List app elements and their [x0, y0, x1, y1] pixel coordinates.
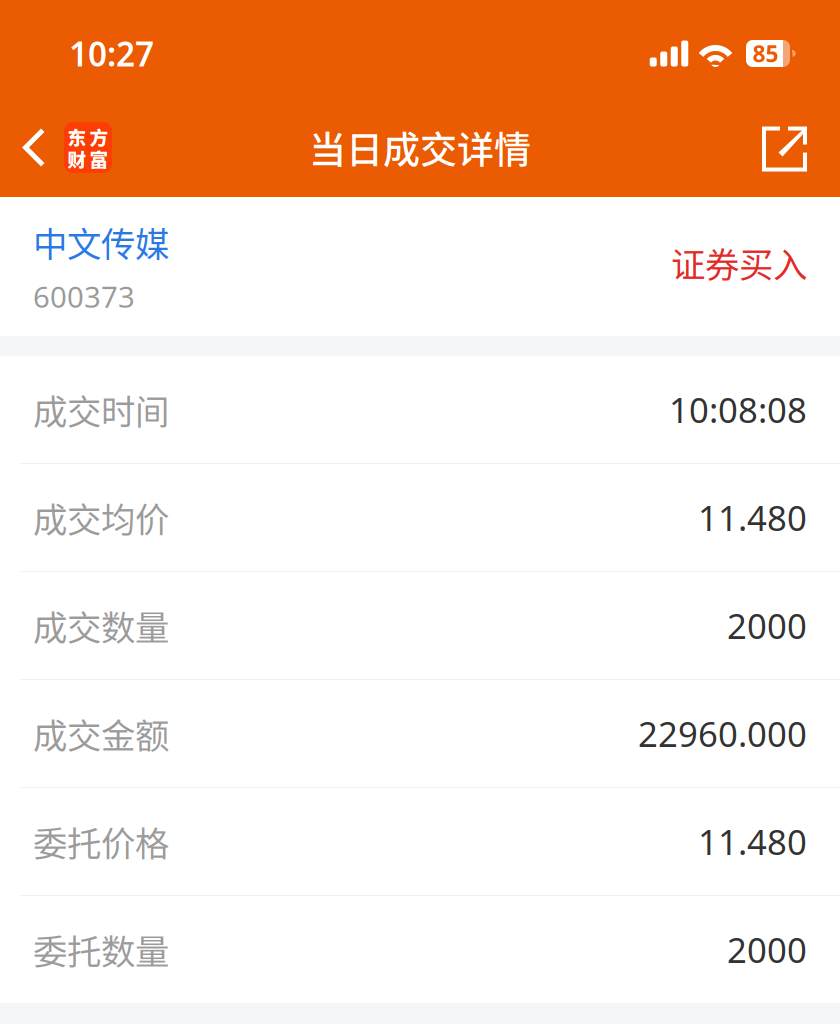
- staticText: 600373: [33, 277, 135, 316]
- staticText: 富: [89, 145, 108, 172]
- staticText: 2000: [727, 602, 807, 648]
- staticText: 22960.000: [638, 710, 807, 756]
- staticText: 10:08:08: [669, 386, 807, 432]
- staticText: 委托数量: [33, 925, 169, 974]
- staticText: 委托价格: [33, 817, 169, 866]
- staticText: 方: [89, 123, 108, 150]
- staticText: 成交数量: [33, 601, 169, 650]
- staticText: 成交金额: [33, 709, 169, 758]
- staticText: 11.480: [698, 494, 807, 540]
- button[interactable]: Back: [0, 98, 122, 197]
- staticText: 85: [752, 38, 778, 68]
- staticText: 2000: [727, 926, 807, 972]
- staticText: 10:27: [69, 31, 154, 76]
- staticText: 财: [67, 145, 86, 172]
- staticText: 当日成交详情: [309, 121, 531, 174]
- staticText: 11.480: [698, 818, 807, 864]
- staticText: 证券买入: [671, 238, 807, 287]
- staticText: 成交时间: [33, 385, 169, 434]
- staticText: 东: [67, 123, 86, 150]
- staticText: 中文传媒: [33, 217, 169, 267]
- button[interactable]: Share: [732, 98, 840, 197]
- staticText: 成交均价: [33, 493, 169, 542]
